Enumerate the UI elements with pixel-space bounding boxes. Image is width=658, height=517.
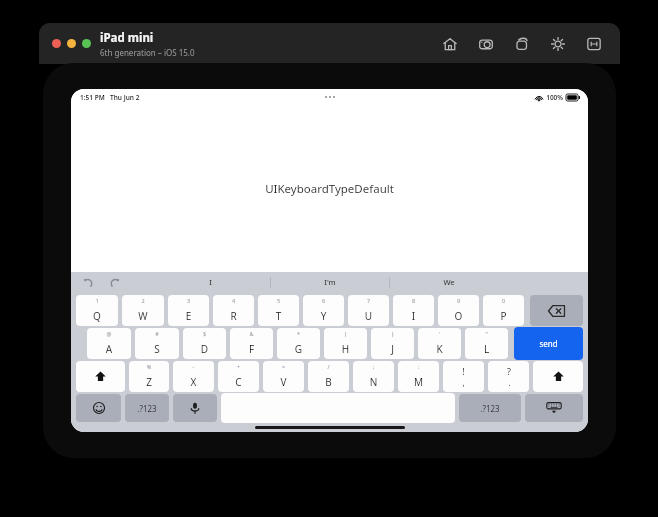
staticText: ': [418, 330, 461, 337]
button[interactable]: %: [129, 361, 169, 392]
staticText: X: [173, 375, 214, 389]
staticText: 6th generation – iOS 15.0: [100, 47, 195, 58]
button[interactable]: !: [443, 361, 484, 392]
staticText: ;: [353, 363, 394, 370]
button[interactable]: Shift: [533, 361, 583, 392]
button[interactable]: Hide keyboard: [525, 394, 583, 422]
button[interactable]: $: [183, 328, 226, 359]
staticText: 5: [258, 297, 299, 304]
button[interactable]: Shift: [76, 361, 125, 392]
button[interactable]: (: [324, 328, 367, 359]
staticText: .?123: [137, 403, 157, 414]
button[interactable]: ': [418, 328, 461, 359]
staticText: F: [230, 342, 273, 356]
button[interactable]: Close: [52, 39, 61, 48]
staticText: .?123: [480, 403, 500, 414]
staticText: P: [483, 309, 524, 323]
button[interactable]: Backspace: [530, 295, 583, 326]
staticText: 1: [76, 297, 118, 304]
button[interactable]: Minimize: [67, 39, 76, 48]
staticText: @: [87, 330, 131, 337]
button[interactable]: Fit to screen: [584, 34, 604, 54]
staticText: J: [371, 342, 414, 356]
staticText: U: [348, 309, 389, 323]
staticText: I'm: [324, 277, 336, 287]
staticText: 9: [438, 297, 479, 304]
staticText: &: [230, 330, 273, 337]
staticText: -: [173, 363, 214, 370]
button[interactable]: Maximize: [82, 39, 91, 48]
staticText: 1:51 PM: [80, 93, 105, 102]
staticText: B: [308, 375, 349, 389]
staticText: K: [418, 342, 461, 356]
staticText: A: [87, 342, 131, 356]
staticText: H: [324, 342, 367, 356]
button[interactable]: ": [465, 328, 508, 359]
staticText: +: [218, 363, 259, 370]
button[interactable]: 6: [303, 295, 344, 326]
staticText: We: [443, 277, 455, 287]
button[interactable]: =: [263, 361, 304, 392]
button[interactable]: Home: [440, 34, 460, 54]
staticText: Q: [76, 309, 118, 323]
staticText: ": [465, 330, 508, 337]
button[interactable]: 1: [76, 295, 118, 326]
staticText: ?: [507, 365, 511, 377]
button[interactable]: 4: [213, 295, 254, 326]
staticText: Z: [129, 375, 169, 389]
staticText: /: [308, 363, 349, 370]
button[interactable]: Dictation: [173, 394, 217, 422]
button[interactable]: ;: [353, 361, 394, 392]
button[interactable]: ): [371, 328, 414, 359]
staticText: C: [218, 375, 259, 389]
button[interactable]: /: [308, 361, 349, 392]
staticText: 7: [348, 297, 389, 304]
button[interactable]: I'm: [271, 272, 389, 292]
button[interactable]: We: [390, 272, 508, 292]
button[interactable]: Emoji: [76, 394, 121, 422]
staticText: %: [129, 363, 169, 370]
staticText: !: [462, 365, 465, 377]
button[interactable]: 8: [393, 295, 434, 326]
button[interactable]: Undo: [81, 275, 95, 289]
staticText: =: [263, 363, 304, 370]
button[interactable]: -: [173, 361, 214, 392]
button[interactable]: .?123: [125, 394, 169, 422]
staticText: I: [393, 309, 434, 323]
button[interactable]: &: [230, 328, 273, 359]
button[interactable]: 3: [168, 295, 209, 326]
button[interactable]: Redo: [107, 275, 121, 289]
button[interactable]: Screenshot: [476, 34, 496, 54]
staticText: W: [122, 309, 164, 323]
staticText: #: [135, 330, 179, 337]
button[interactable]: 5: [258, 295, 299, 326]
button[interactable]: send: [514, 327, 583, 360]
staticText: 4: [213, 297, 254, 304]
staticText: S: [135, 342, 179, 356]
staticText: 8: [393, 297, 434, 304]
button[interactable]: 0: [483, 295, 524, 326]
staticText: ): [371, 330, 414, 337]
button[interactable]: +: [218, 361, 259, 392]
button[interactable]: #: [135, 328, 179, 359]
button[interactable]: .?123: [459, 394, 521, 422]
button[interactable]: *: [277, 328, 320, 359]
staticText: G: [277, 342, 320, 356]
button[interactable]: @: [87, 328, 131, 359]
staticText: :: [398, 363, 439, 370]
staticText: (: [324, 330, 367, 337]
button[interactable]: ?: [488, 361, 529, 392]
button[interactable]: 7: [348, 295, 389, 326]
staticText: M: [398, 375, 439, 389]
button[interactable]: Appearance: [548, 34, 568, 54]
staticText: iPad mini: [100, 30, 154, 46]
staticText: L: [465, 342, 508, 356]
button[interactable]: I: [151, 272, 270, 292]
staticText: UIKeyboardTypeDefault: [265, 181, 394, 197]
staticText: R: [213, 309, 254, 323]
button[interactable]: :: [398, 361, 439, 392]
button[interactable]: 2: [122, 295, 164, 326]
button[interactable]: Rotate: [512, 34, 532, 54]
button[interactable]: 9: [438, 295, 479, 326]
